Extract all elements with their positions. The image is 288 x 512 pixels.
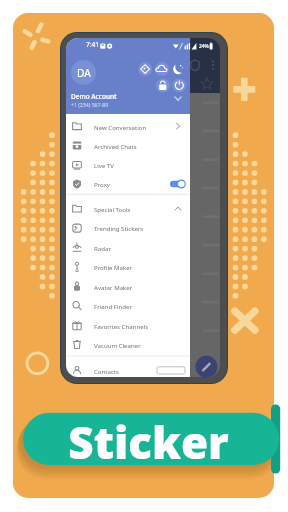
- button[interactable]: New Conversation: [66, 117, 190, 136]
- staticText: Live TV: [94, 161, 114, 169]
- button[interactable]: Live TV: [66, 155, 190, 174]
- staticText: Radar: [94, 244, 111, 252]
- button[interactable]: Special Tools: [66, 199, 190, 218]
- button[interactable]: Favorites Channels: [66, 316, 190, 335]
- staticText: 7:41: [86, 40, 100, 49]
- staticText: Sticker: [68, 412, 229, 464]
- staticText: Trending Stickers: [94, 224, 144, 232]
- staticText: Favorites Channels: [94, 322, 149, 330]
- staticText: Vacuum Cleaner: [94, 341, 141, 349]
- staticText: Demo Account: [71, 92, 117, 101]
- button[interactable]: Trending Stickers: [66, 218, 190, 237]
- button[interactable]: Friend Finder: [66, 296, 190, 315]
- staticText: +1 (234) 567-89: [71, 101, 109, 108]
- button[interactable]: Contacts: [66, 361, 190, 377]
- button[interactable]: Profile Maker: [66, 257, 190, 276]
- button[interactable]: Radar: [66, 238, 190, 257]
- staticText: Friend Finder: [94, 302, 132, 310]
- button[interactable]: Avatar Maker: [66, 277, 190, 296]
- staticText: Special Tools: [94, 205, 131, 213]
- staticText: Archived Chats: [94, 142, 137, 150]
- button[interactable]: Proxy: [66, 174, 190, 193]
- staticText: Profile Maker: [94, 263, 133, 271]
- staticText: DA: [77, 66, 91, 80]
- staticText: Avatar Maker: [94, 283, 133, 291]
- staticText: 24%: [199, 43, 209, 50]
- button[interactable]: Sticker: [23, 413, 279, 465]
- button[interactable]: Archived Chats: [66, 136, 190, 155]
- staticText: New Conversation: [94, 123, 147, 131]
- staticText: Proxy: [94, 180, 110, 188]
- staticText: Contacts: [94, 367, 119, 375]
- button[interactable]: Vacuum Cleaner: [66, 335, 190, 354]
